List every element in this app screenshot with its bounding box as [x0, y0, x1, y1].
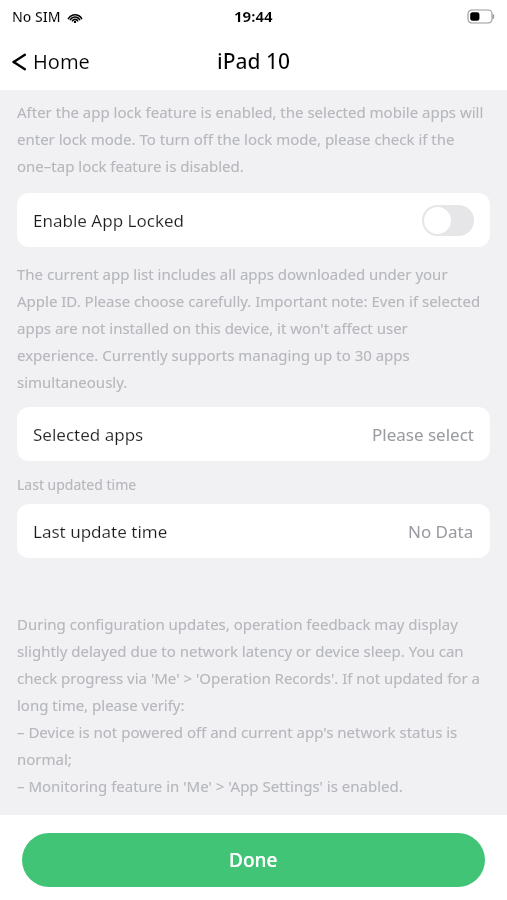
- staticText: Home: [33, 48, 90, 75]
- staticText: No Data: [408, 520, 474, 543]
- staticText: Selected apps: [33, 423, 144, 446]
- staticText: The current app list includes all apps d…: [17, 264, 490, 393]
- button[interactable]: Last update time: [17, 504, 490, 558]
- staticText: No SIM: [12, 7, 61, 26]
- staticText: 19:44: [234, 6, 273, 26]
- button[interactable]: Selected apps: [17, 407, 490, 461]
- button[interactable]: Enable App Locked: [17, 193, 490, 247]
- staticText: Enable App Locked: [33, 209, 185, 232]
- staticText: Done: [229, 847, 278, 873]
- staticText: Last updated time: [17, 475, 137, 494]
- button[interactable]: Done: [22, 833, 485, 887]
- staticText: After the app lock feature is enabled, t…: [17, 102, 490, 177]
- staticText: Last update time: [33, 520, 168, 543]
- staticText: Please select: [372, 423, 474, 446]
- staticText: iPad 10: [217, 47, 290, 76]
- button[interactable]: Home: [0, 42, 100, 81]
- staticText: During configuration updates, operation …: [17, 614, 490, 797]
- button[interactable]: Enable App Locked toggle: [422, 205, 474, 236]
